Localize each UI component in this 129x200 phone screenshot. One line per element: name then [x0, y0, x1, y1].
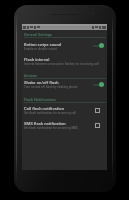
- button[interactable]: Shake on/off flash: [22, 78, 107, 89]
- staticText: Set flash notification for incoming call: [24, 111, 77, 115]
- staticText: Interval between consecutive flashes for…: [24, 62, 99, 66]
- staticText: Actions: [24, 73, 37, 77]
- staticText: SMS flash notification: [24, 121, 66, 126]
- staticText: General Settings: [24, 32, 53, 36]
- button[interactable]: Flash interval: [22, 55, 107, 66]
- button[interactable]: Checkbox: [93, 121, 102, 130]
- staticText: Flash Notifications: [24, 97, 56, 101]
- button[interactable]: Button swipe sound: [22, 40, 107, 51]
- button[interactable]: Call flash notification: [22, 104, 107, 115]
- staticText: Enable or disable sound: [24, 47, 57, 51]
- staticText: Call flash notification: [24, 106, 65, 111]
- staticText: Flash interval: [24, 57, 50, 62]
- staticText: Shake on/off flash: [24, 80, 59, 85]
- button[interactable]: SMS flash notification: [22, 119, 107, 130]
- button[interactable]: Checkbox: [93, 106, 102, 115]
- staticText: Button swipe sound: [24, 42, 62, 47]
- staticText: Turn on and off flash by shaking phone: [24, 85, 78, 89]
- staticText: Set flash notification for incoming SMS: [24, 126, 78, 130]
- button[interactable]: Toggle: [92, 80, 104, 89]
- button[interactable]: Toggle: [92, 41, 104, 50]
